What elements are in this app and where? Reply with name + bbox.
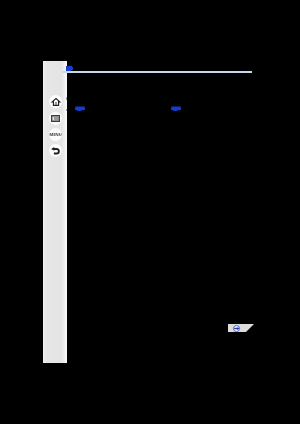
button[interactable]: Link xyxy=(75,106,85,111)
button[interactable]: Screen xyxy=(49,112,62,125)
button[interactable]: Menu xyxy=(49,128,62,141)
button[interactable]: Link xyxy=(171,106,181,111)
staticText: MENU xyxy=(49,132,62,138)
button[interactable]: Home xyxy=(49,95,62,108)
button[interactable]: Link xyxy=(66,66,73,71)
button[interactable]: Rotate xyxy=(228,324,254,332)
button[interactable]: Back xyxy=(49,144,62,157)
